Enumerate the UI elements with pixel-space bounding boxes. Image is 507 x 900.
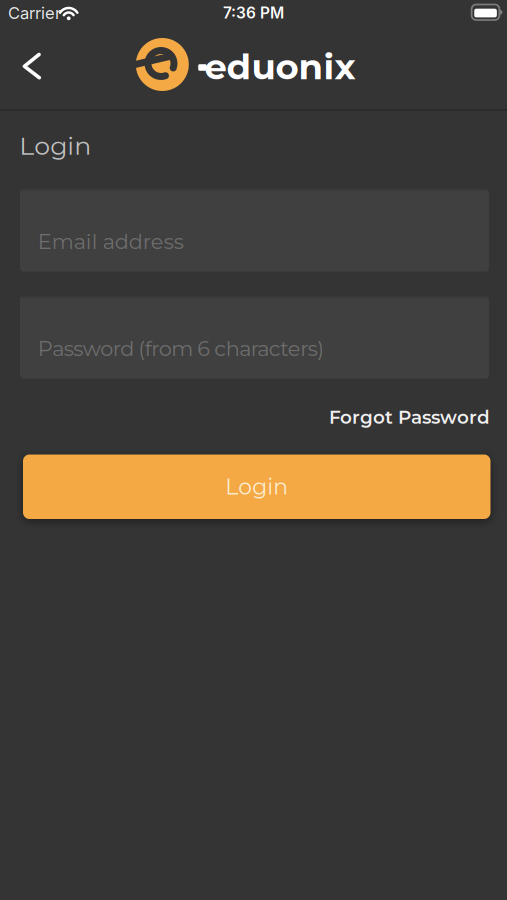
- staticText: eduonix: [204, 45, 355, 88]
- staticText: Password (from 6 characters): [38, 336, 324, 361]
- staticText: Login: [225, 473, 288, 500]
- button[interactable]: Login: [23, 454, 490, 519]
- button[interactable]: Forgot Password: [329, 406, 490, 428]
- button[interactable]: [14, 50, 54, 82]
- staticText: Forgot Password: [329, 406, 490, 428]
- button[interactable]: Password (from 6 characters): [20, 296, 489, 378]
- button[interactable]: Email address: [20, 189, 489, 271]
- staticText: Carrier: [8, 3, 61, 23]
- staticText: Email address: [38, 229, 184, 254]
- staticText: 7:36 PM: [223, 3, 284, 22]
- staticText: Login: [19, 130, 91, 161]
